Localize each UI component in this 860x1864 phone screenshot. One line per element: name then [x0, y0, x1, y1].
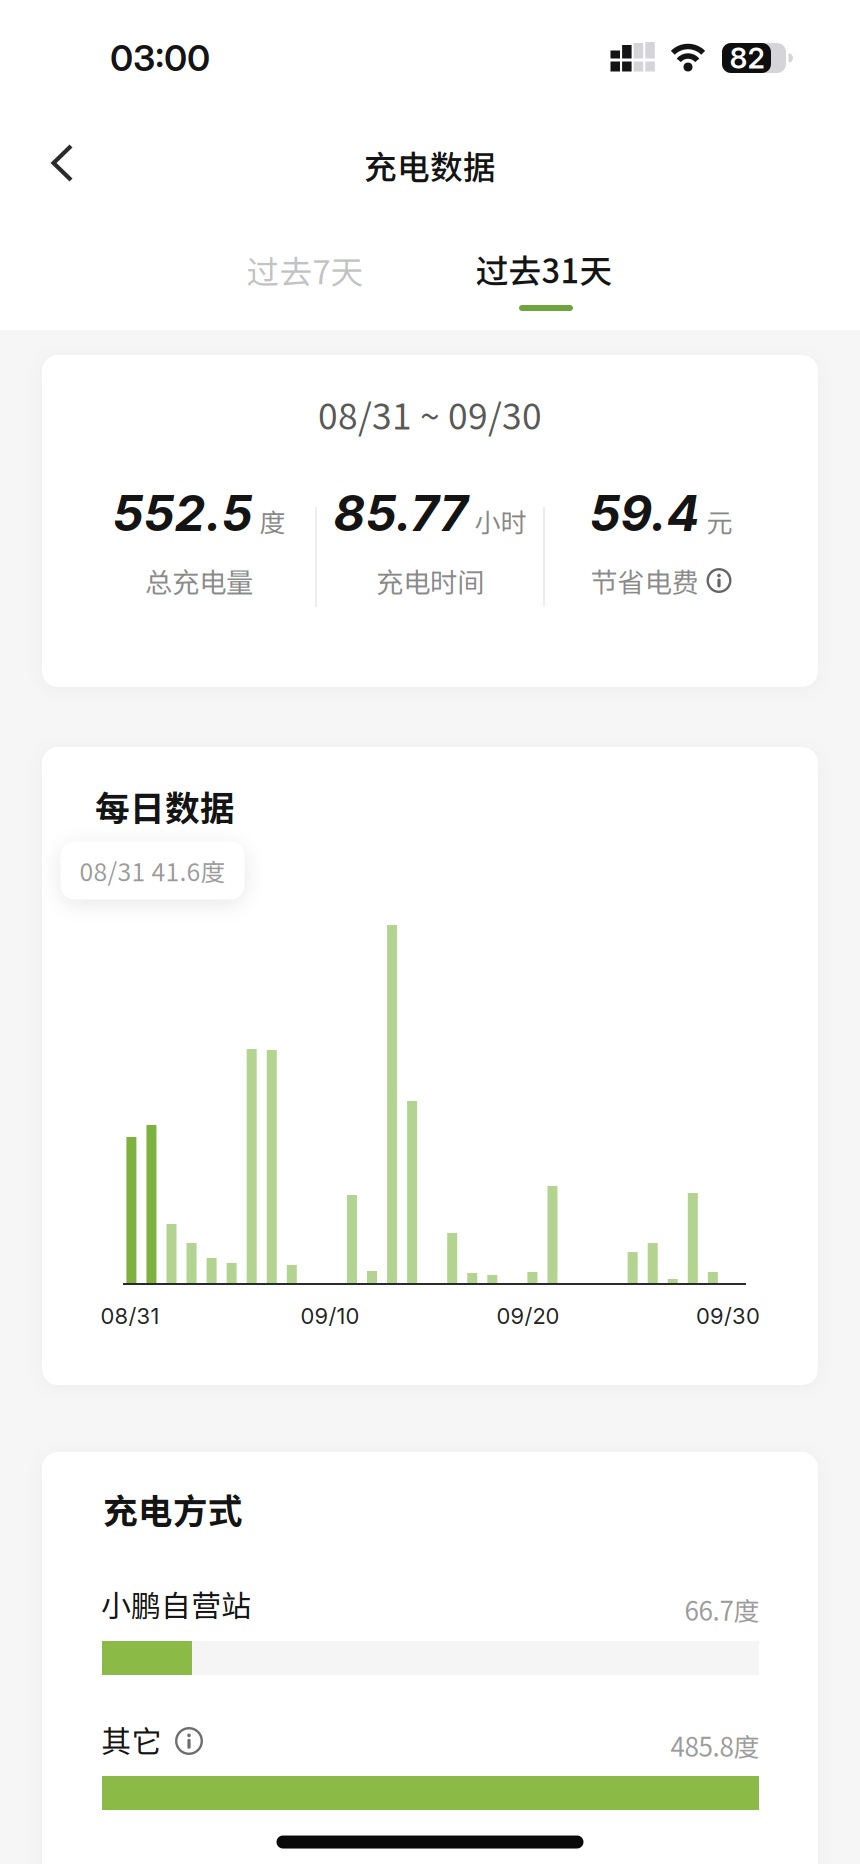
- staticText: 其它: [101, 1718, 161, 1761]
- button[interactable]: [706, 568, 731, 593]
- button[interactable]: 过去31天: [434, 243, 654, 313]
- staticText: 66.7度: [684, 1591, 759, 1628]
- staticText: 过去7天: [246, 246, 363, 294]
- button[interactable]: [175, 1727, 203, 1755]
- staticText: 小时: [474, 502, 526, 540]
- staticText: 08/31 41.6度: [79, 853, 225, 888]
- staticText: 充电方式: [103, 1484, 243, 1534]
- staticText: 09/20: [496, 1303, 559, 1329]
- button[interactable]: 过去7天: [205, 240, 405, 300]
- staticText: 485.8度: [670, 1727, 759, 1764]
- staticText: 03:00: [110, 36, 210, 80]
- staticText: 充电时间: [376, 561, 484, 600]
- staticText: 每日数据: [95, 781, 235, 831]
- staticText: 08/31: [100, 1303, 159, 1329]
- staticText: 小鹏自营站: [101, 1582, 251, 1626]
- staticText: 82: [729, 41, 764, 75]
- staticText: 总充电量: [145, 561, 253, 600]
- staticText: 元: [706, 502, 732, 540]
- staticText: 08/31 ~ 09/30: [318, 388, 542, 440]
- staticText: 09/10: [300, 1303, 359, 1329]
- staticText: 节省电费: [590, 561, 698, 600]
- staticText: 充电数据: [364, 141, 496, 189]
- staticText: 过去31天: [475, 245, 612, 293]
- staticText: 度: [259, 502, 285, 540]
- staticText: 59.4: [589, 484, 699, 543]
- staticText: 09/30: [696, 1303, 760, 1329]
- staticText: 85.77: [333, 484, 467, 543]
- staticText: 552.5: [112, 484, 252, 543]
- button[interactable]: [40, 137, 92, 189]
